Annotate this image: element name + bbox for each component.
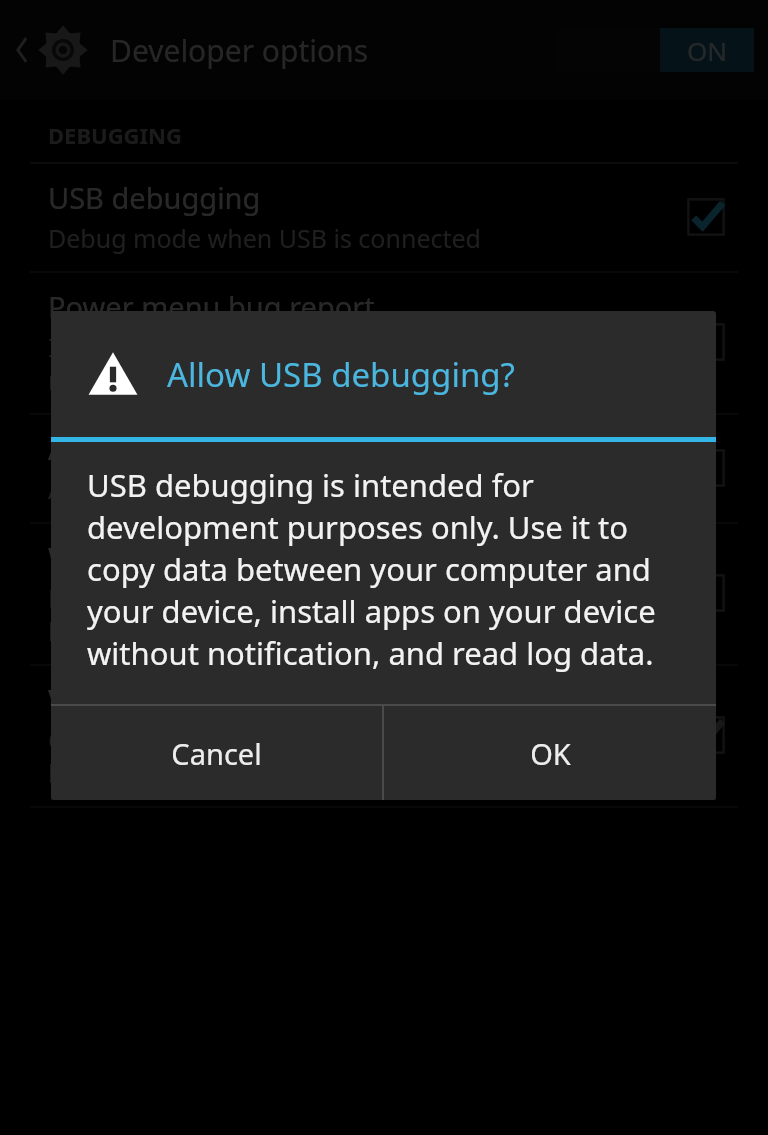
staticText: Verify apps over USB — [48, 680, 330, 719]
button[interactable]: Back to settings — [10, 23, 96, 77]
button[interactable]: Power menu bug report — [0, 273, 768, 413]
staticText: Developer options — [110, 30, 369, 71]
staticText: Wait for debugger — [48, 538, 298, 577]
button[interactable]: Verify apps over USB — [0, 666, 768, 806]
button[interactable]: Developer options on — [558, 26, 754, 74]
staticText: USB debugging — [48, 178, 261, 217]
staticText: ON — [687, 33, 728, 68]
button[interactable]: Allow mock locations — [0, 415, 768, 522]
button[interactable]: USB debugging — [0, 164, 768, 271]
staticText: Cancel — [171, 734, 262, 773]
button[interactable]: Cancel — [51, 706, 382, 800]
button[interactable]: Wait for debugger — [0, 524, 768, 664]
staticText: Allow USB debugging? — [167, 352, 515, 397]
button[interactable]: OK — [384, 706, 716, 800]
staticText: DEBUGGING — [48, 120, 182, 150]
staticText: Debugged application waits for debugger … — [48, 581, 668, 648]
staticText: Include option in power menu for taking … — [48, 330, 668, 397]
staticText: Debug mode when USB is connected — [48, 221, 481, 255]
staticText: Allow mock locations — [48, 472, 294, 506]
staticText: Power menu bug report — [48, 287, 375, 326]
staticText: Allow mock locations — [48, 429, 333, 468]
staticText: Check apps installed via ADB/ADT for har… — [48, 723, 668, 790]
staticText: USB debugging is intended for developmen… — [87, 464, 690, 674]
staticText: OK — [530, 734, 571, 773]
